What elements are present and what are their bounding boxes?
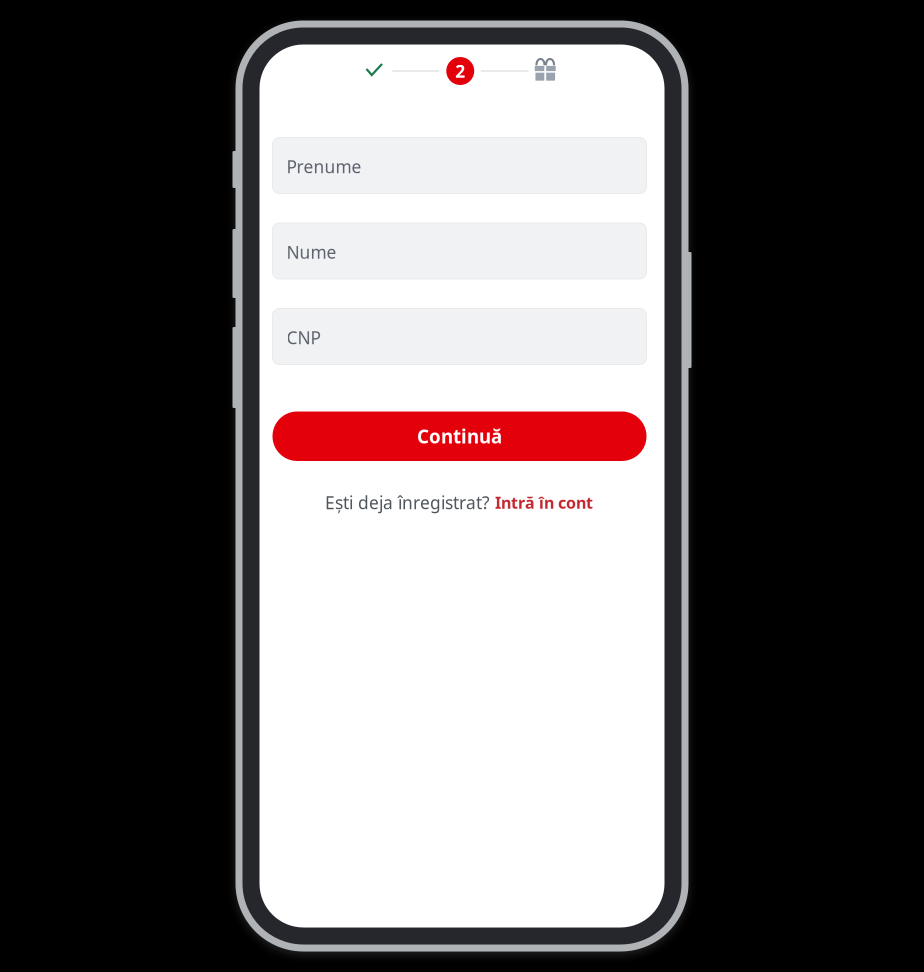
- button[interactable]: Intră în cont: [495, 492, 593, 513]
- staticText: Ești deja înregistrat?: [325, 491, 490, 514]
- staticText: Intră în cont: [495, 492, 593, 513]
- button[interactable]: Continuă: [272, 411, 646, 461]
- staticText: 2: [455, 59, 465, 82]
- staticText: Continuă: [417, 424, 502, 449]
- button[interactable]: Nume: [272, 223, 646, 279]
- staticText: Prenume: [286, 155, 361, 178]
- staticText: Nume: [286, 240, 336, 263]
- button[interactable]: Prenume: [272, 137, 646, 193]
- button[interactable]: CNP: [272, 308, 646, 364]
- staticText: CNP: [286, 326, 320, 349]
